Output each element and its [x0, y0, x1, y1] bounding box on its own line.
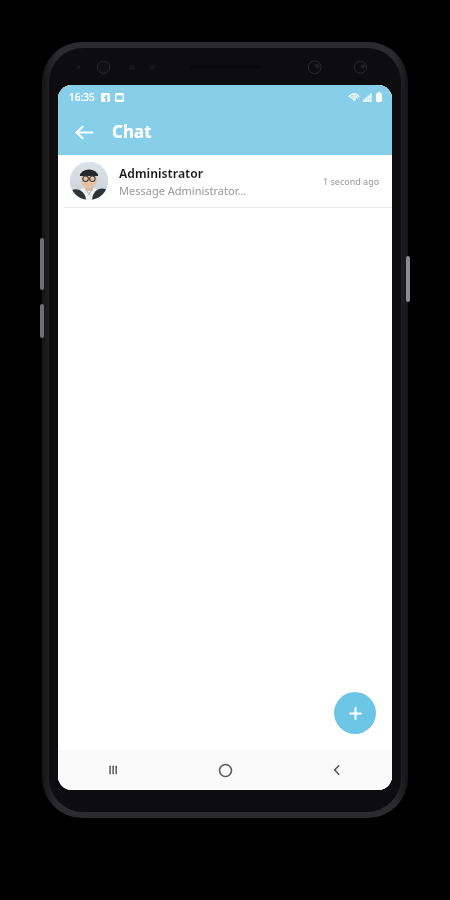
staticText: Chat — [112, 120, 152, 143]
button[interactable]: Back — [64, 112, 104, 152]
button[interactable]: Administrator — [58, 155, 392, 207]
button[interactable]: Home — [170, 750, 281, 790]
button[interactable]: Recents — [58, 750, 170, 790]
staticText: 1 second ago — [323, 175, 380, 187]
staticText: 16:35 — [69, 90, 95, 104]
staticText: Message Administrator… — [119, 183, 247, 198]
staticText: Administrator — [119, 165, 204, 181]
button[interactable]: New chat — [334, 692, 376, 734]
button[interactable]: Back — [281, 750, 392, 790]
